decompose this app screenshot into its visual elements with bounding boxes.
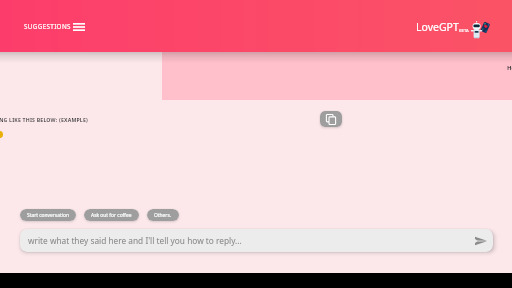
button[interactable]: Ask out for coffee bbox=[84, 209, 139, 221]
staticText: Hey! how are you doing? bbox=[507, 64, 512, 72]
button[interactable]: Start conversation bbox=[20, 209, 76, 221]
staticText: write what they said here and I'll tell … bbox=[28, 235, 242, 246]
staticText: Others. bbox=[154, 212, 172, 219]
staticText: Ask out for coffee bbox=[91, 212, 132, 219]
staticText: LoveGPT bbox=[416, 20, 459, 34]
button[interactable]: Send bbox=[475, 236, 487, 246]
staticText: ING LIKE THIS BELOW: (EXAMPLE) bbox=[0, 116, 88, 123]
staticText: BETA bbox=[459, 28, 469, 34]
button[interactable]: Others. bbox=[147, 209, 179, 221]
staticText: Start conversation bbox=[27, 212, 69, 219]
button[interactable]: Copy bbox=[320, 111, 342, 127]
button[interactable]: write what they said here and I'll tell … bbox=[20, 229, 493, 252]
button[interactable]: SUGGESTIONS bbox=[24, 22, 85, 31]
staticText: SUGGESTIONS bbox=[24, 22, 71, 31]
